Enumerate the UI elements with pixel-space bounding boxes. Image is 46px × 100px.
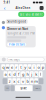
button[interactable]: l: [39, 71, 42, 77]
staticText: w: [6, 64, 9, 70]
staticText: return: [35, 87, 40, 89]
button[interactable]: o: [36, 64, 40, 70]
button[interactable]: Video call: [40, 6, 44, 10]
staticText: l: [40, 71, 41, 77]
staticText: y: [24, 64, 26, 70]
staticText: g: [22, 71, 24, 77]
staticText: 9:41: [3, 1, 10, 4]
staticText: u: [29, 64, 31, 70]
button[interactable]: q: [1, 64, 5, 70]
staticText: ‹: [4, 4, 6, 12]
staticText: r: [15, 64, 17, 70]
staticText: See you at seven!: [20, 13, 43, 16]
button[interactable]: x: [12, 78, 16, 84]
button[interactable]: View details: [7, 43, 26, 46]
staticText: b: [26, 78, 28, 84]
staticText: j: [31, 71, 32, 77]
button[interactable]: z: [8, 78, 12, 84]
button[interactable]: e: [10, 64, 14, 70]
button[interactable]: k: [34, 71, 38, 77]
button[interactable]: p: [41, 64, 45, 70]
staticText: Sounds good: [7, 20, 26, 23]
staticText: space: [20, 86, 27, 90]
button[interactable]: r: [14, 64, 18, 70]
button[interactable]: s: [8, 71, 12, 77]
button[interactable]: m: [34, 78, 38, 84]
staticText: c: [18, 78, 20, 84]
staticText: s: [9, 71, 11, 77]
staticText: z: [9, 78, 11, 84]
button[interactable]: f: [17, 71, 21, 77]
staticText: p: [42, 64, 44, 70]
button[interactable]: c: [17, 78, 21, 84]
button[interactable]: b: [25, 78, 29, 84]
button[interactable]: h: [25, 71, 29, 77]
button[interactable]: return: [33, 85, 42, 91]
staticText: Alex Chen: [15, 6, 30, 10]
staticText: a: [4, 71, 6, 77]
button[interactable]: n: [30, 78, 34, 84]
button[interactable]: space: [15, 85, 32, 91]
button[interactable]: d: [12, 71, 16, 77]
button[interactable]: iMessage: [7, 57, 44, 62]
button[interactable]: y: [23, 64, 27, 70]
staticText: o: [37, 64, 39, 70]
staticText: iMessage: [8, 58, 20, 61]
staticText: f: [18, 71, 19, 77]
button[interactable]: w: [6, 64, 10, 70]
button[interactable]: u: [28, 64, 32, 70]
button[interactable]: a: [3, 71, 7, 77]
staticText: v: [22, 78, 24, 84]
staticText: Tonight at 7:00 PM: [7, 32, 34, 35]
staticText: Dinner at Nori: [7, 27, 28, 31]
staticText: t: [20, 64, 21, 70]
button[interactable]: g: [21, 71, 25, 77]
button[interactable]: [10, 85, 14, 91]
staticText: k: [35, 71, 37, 77]
button[interactable]: j: [30, 71, 34, 77]
staticText: d: [13, 71, 15, 77]
button[interactable]: 123: [4, 85, 10, 91]
staticText: n: [31, 78, 33, 84]
staticText: 123: [6, 87, 9, 89]
button[interactable]: t: [19, 64, 23, 70]
staticText: h: [26, 71, 28, 77]
button[interactable]: Add attachment: [2, 57, 6, 61]
staticText: x: [13, 78, 15, 84]
button[interactable]: i: [32, 64, 36, 70]
staticText: View details: [9, 43, 25, 46]
staticText: e: [11, 64, 13, 70]
button[interactable]: Back: [2, 4, 7, 11]
staticText: m: [34, 78, 38, 84]
staticText: q: [2, 64, 4, 70]
button[interactable]: v: [21, 78, 25, 84]
